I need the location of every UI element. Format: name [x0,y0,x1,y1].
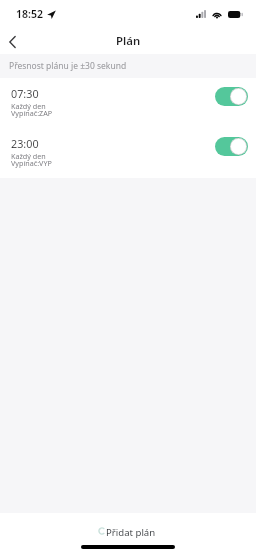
button[interactable]: 07:30 [0,78,256,128]
button[interactable]: 23:00 [0,128,256,178]
staticText: Každý den [11,151,46,161]
staticText: 18:52 [16,7,43,21]
button[interactable]: Přidat plán [92,521,164,541]
staticText: 23:00 [11,136,39,151]
button[interactable]: Toggle [215,87,248,106]
staticText: Přesnost plánu je ±30 sekund [9,60,127,72]
staticText: Každý den [11,101,46,111]
staticText: Přidat plán [106,526,156,539]
staticText: Plán [116,33,141,49]
staticText: Vypínač:ZAP [11,108,53,118]
button[interactable]: Back [2,32,22,52]
staticText: Vypínač:VYP [11,158,52,168]
button[interactable]: Toggle [215,137,248,156]
staticText: 07:30 [11,86,39,101]
